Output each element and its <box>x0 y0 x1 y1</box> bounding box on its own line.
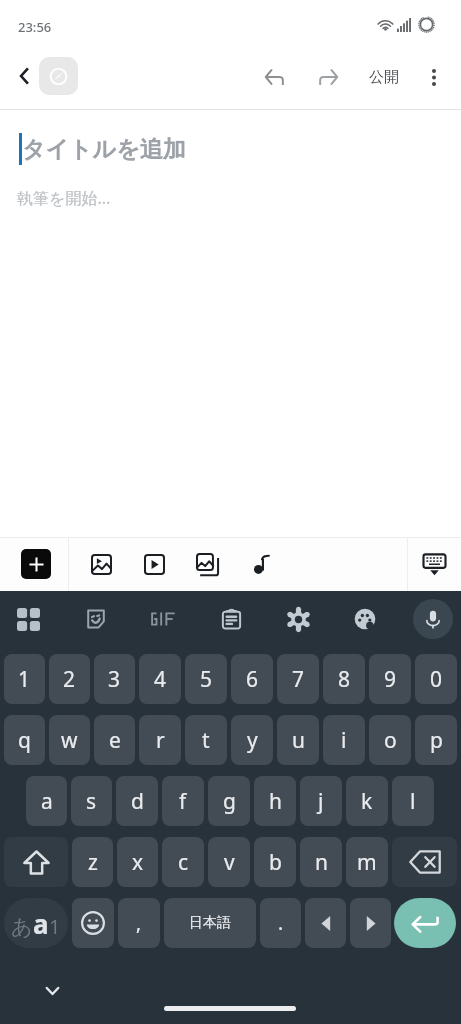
button[interactable]: h <box>254 776 296 826</box>
button[interactable]: 5 <box>185 654 227 704</box>
button[interactable]: q <box>4 715 45 765</box>
button[interactable]: g <box>208 776 250 826</box>
button[interactable]: Shift <box>4 837 68 887</box>
button[interactable]: i <box>323 715 365 765</box>
staticText: t <box>202 726 210 755</box>
button[interactable]: Backspace <box>392 837 457 887</box>
button[interactable]: 日本語 <box>164 898 256 948</box>
staticText: v <box>224 848 235 877</box>
staticText: 1 <box>49 913 61 940</box>
staticText: . <box>278 910 284 936</box>
button[interactable]: v <box>208 837 250 887</box>
button[interactable]: Stickers <box>77 600 115 638</box>
button[interactable]: 0 <box>415 654 457 704</box>
button[interactable]: s <box>71 776 112 826</box>
button[interactable]: Site icon <box>39 57 78 95</box>
button[interactable]: Clipboard <box>212 600 250 638</box>
button[interactable]: Apps <box>9 600 47 638</box>
button[interactable]: Add block <box>4 537 68 591</box>
staticText: r <box>156 726 165 755</box>
button[interactable]: l <box>392 776 434 826</box>
staticText: q <box>18 726 31 755</box>
button[interactable]: GIF <box>144 600 182 638</box>
staticText: タイトルを追加 <box>22 135 186 164</box>
button[interactable]: j <box>300 776 342 826</box>
staticText: 8 <box>338 665 351 694</box>
staticText: f <box>179 787 187 816</box>
button[interactable]: 7 <box>277 654 319 704</box>
button[interactable]: c <box>162 837 204 887</box>
button[interactable]: m <box>346 837 388 887</box>
button[interactable]: More options <box>415 58 453 96</box>
button[interactable]: n <box>300 837 342 887</box>
button[interactable]: Video <box>130 537 178 591</box>
staticText: n <box>315 848 328 877</box>
staticText: a <box>33 906 49 941</box>
staticText: o <box>384 726 397 755</box>
staticText: 23:56 <box>18 18 52 36</box>
staticText: 0 <box>430 665 443 694</box>
button[interactable]: Hide keyboard <box>37 976 67 1006</box>
button[interactable]: e <box>94 715 135 765</box>
button[interactable]: . <box>260 898 301 948</box>
button[interactable]: y <box>231 715 273 765</box>
staticText: l <box>410 787 416 816</box>
button[interactable]: 9 <box>369 654 411 704</box>
button[interactable]: 2 <box>49 654 90 704</box>
button[interactable]: a <box>26 776 67 826</box>
button[interactable]: Move right <box>350 898 391 948</box>
button[interactable]: p <box>415 715 457 765</box>
staticText: s <box>86 787 97 816</box>
staticText: k <box>361 787 373 816</box>
button[interactable]: u <box>277 715 319 765</box>
staticText: h <box>269 787 282 816</box>
staticText: y <box>247 726 258 755</box>
button[interactable]: f <box>162 776 204 826</box>
button[interactable]: , <box>118 898 160 948</box>
staticText: a <box>41 787 53 816</box>
button[interactable]: Hide keyboard <box>410 537 458 591</box>
button[interactable]: z <box>72 837 113 887</box>
staticText: c <box>178 848 189 877</box>
button[interactable]: Audio <box>237 537 285 591</box>
button[interactable]: 公開 <box>360 56 407 98</box>
button[interactable]: 6 <box>231 654 273 704</box>
button[interactable]: t <box>185 715 227 765</box>
staticText: b <box>269 848 282 877</box>
staticText: 公開 <box>369 68 399 87</box>
staticText: 4 <box>154 665 167 694</box>
staticText: z <box>88 848 98 877</box>
button[interactable]: Emoji <box>72 898 114 948</box>
button[interactable]: 3 <box>94 654 135 704</box>
button[interactable]: 4 <box>139 654 181 704</box>
staticText: j <box>318 787 324 816</box>
staticText: m <box>357 848 377 877</box>
button[interactable]: Enter <box>394 898 456 948</box>
button[interactable]: b <box>254 837 296 887</box>
button[interactable]: Image <box>77 537 125 591</box>
button[interactable]: x <box>117 837 158 887</box>
button[interactable]: Voice input <box>413 599 453 639</box>
button[interactable]: 1 <box>4 654 45 704</box>
button[interactable]: d <box>116 776 158 826</box>
staticText: 9 <box>384 665 397 694</box>
staticText: g <box>223 787 236 816</box>
button[interactable]: Theme <box>346 600 384 638</box>
staticText: i <box>341 726 347 755</box>
button[interactable]: Switch input mode <box>4 898 68 948</box>
button[interactable]: w <box>49 715 90 765</box>
button[interactable]: k <box>346 776 388 826</box>
button[interactable]: Gallery <box>183 537 231 591</box>
button[interactable]: 8 <box>323 654 365 704</box>
staticText: あ <box>11 914 33 940</box>
button[interactable]: Settings <box>279 600 317 638</box>
button[interactable]: Redo <box>309 58 347 96</box>
button[interactable]: Back <box>7 59 41 93</box>
button[interactable]: Undo <box>255 58 293 96</box>
button[interactable]: r <box>139 715 181 765</box>
staticText: x <box>132 848 144 877</box>
staticText: 2 <box>63 665 76 694</box>
button[interactable]: Move left <box>305 898 346 948</box>
button[interactable]: o <box>369 715 411 765</box>
staticText: w <box>61 726 78 755</box>
